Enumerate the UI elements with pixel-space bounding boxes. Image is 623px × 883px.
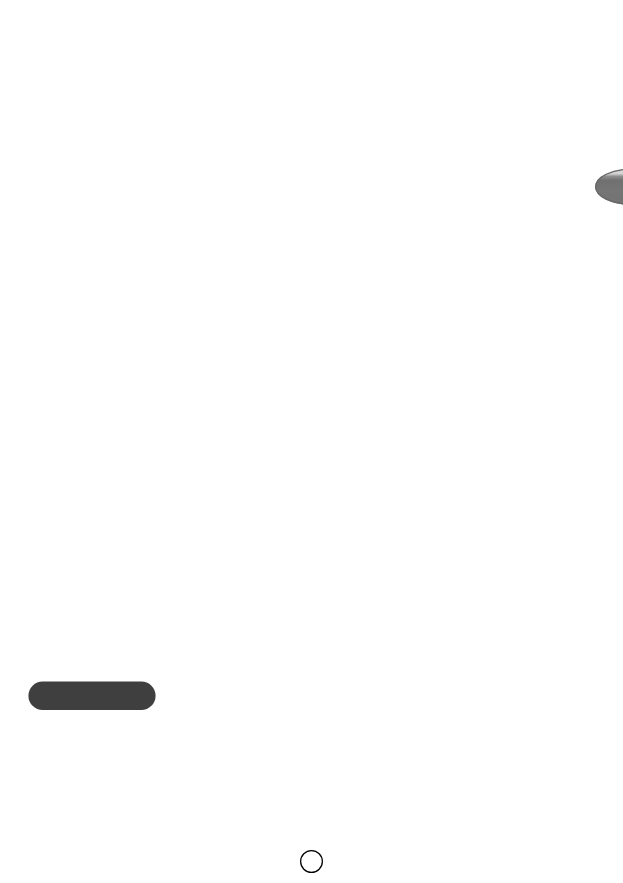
button[interactable]: Notification bubble bbox=[595, 168, 623, 205]
button[interactable]: Primary action bbox=[28, 681, 157, 711]
button[interactable]: Home bbox=[299, 849, 325, 875]
